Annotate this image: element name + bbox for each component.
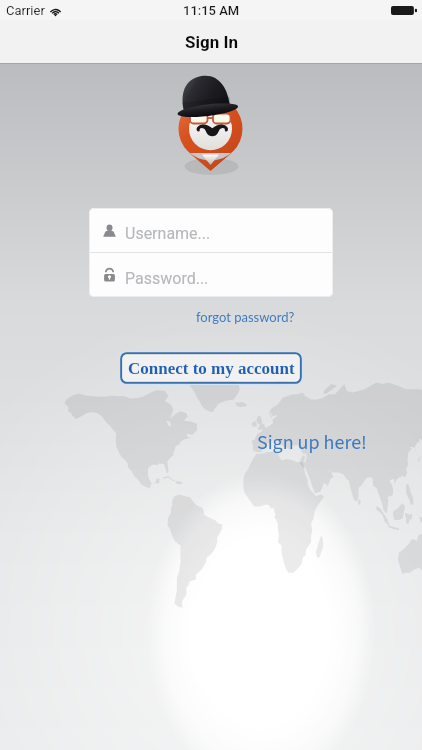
staticText: 11:15 AM [183, 3, 240, 18]
staticText: Password... [125, 269, 209, 288]
staticText: Sign up here! [257, 429, 367, 457]
staticText: Carrier [6, 3, 45, 18]
button[interactable]: forgot password? [190, 306, 301, 328]
button[interactable]: Connect to my account [119, 351, 303, 385]
staticText: Connect to my account [128, 359, 295, 378]
staticText: Sign In [185, 32, 238, 52]
button[interactable]: Username... [89, 208, 333, 252]
staticText: forgot password? [196, 309, 295, 325]
button[interactable]: Sign up here! [251, 426, 373, 460]
staticText: Username... [125, 224, 211, 243]
button[interactable]: Password... [89, 253, 333, 297]
